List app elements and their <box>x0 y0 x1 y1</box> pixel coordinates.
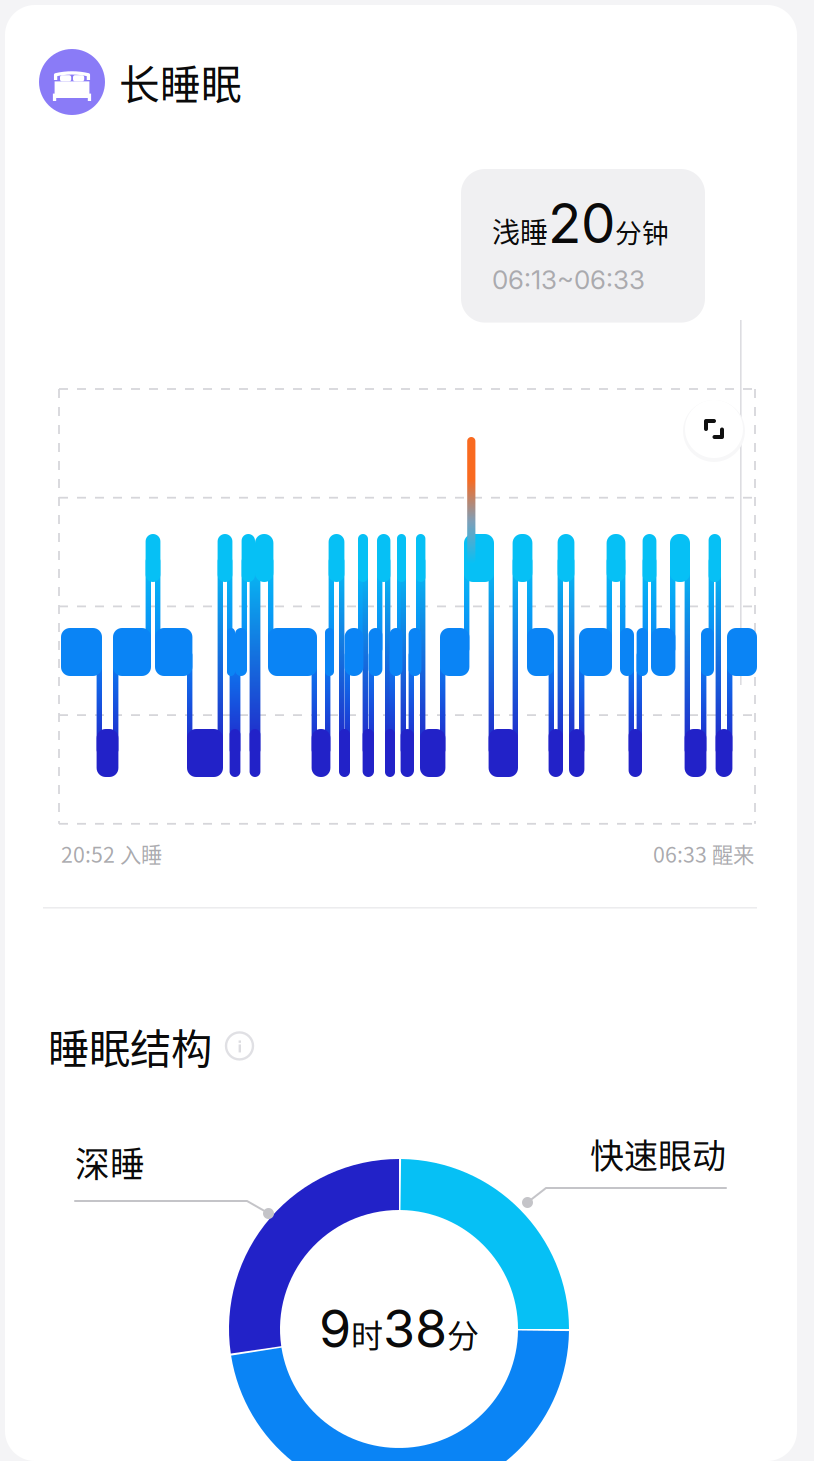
staticText: 20:52 入睡 <box>61 838 162 869</box>
staticText: 06:33 醒来 <box>653 838 754 869</box>
staticText: 快速眼动 <box>590 1129 726 1178</box>
staticText: 长睡眠 <box>119 53 242 111</box>
button[interactable]: Expand chart <box>683 398 745 460</box>
staticText: 38 <box>383 1297 447 1360</box>
staticText: 9 <box>319 1297 351 1360</box>
staticText: 06:13~06:33 <box>492 264 645 296</box>
staticText: 深睡 <box>75 1137 145 1187</box>
button[interactable]: 睡眠结构 <box>48 1016 253 1076</box>
staticText: 睡眠结构 <box>48 1016 212 1076</box>
staticText: 分钟 <box>615 212 669 251</box>
staticText: 20 <box>548 190 615 256</box>
staticText: 时 <box>351 1310 383 1357</box>
staticText: 分 <box>447 1310 479 1357</box>
staticText: 浅睡 <box>492 210 548 251</box>
